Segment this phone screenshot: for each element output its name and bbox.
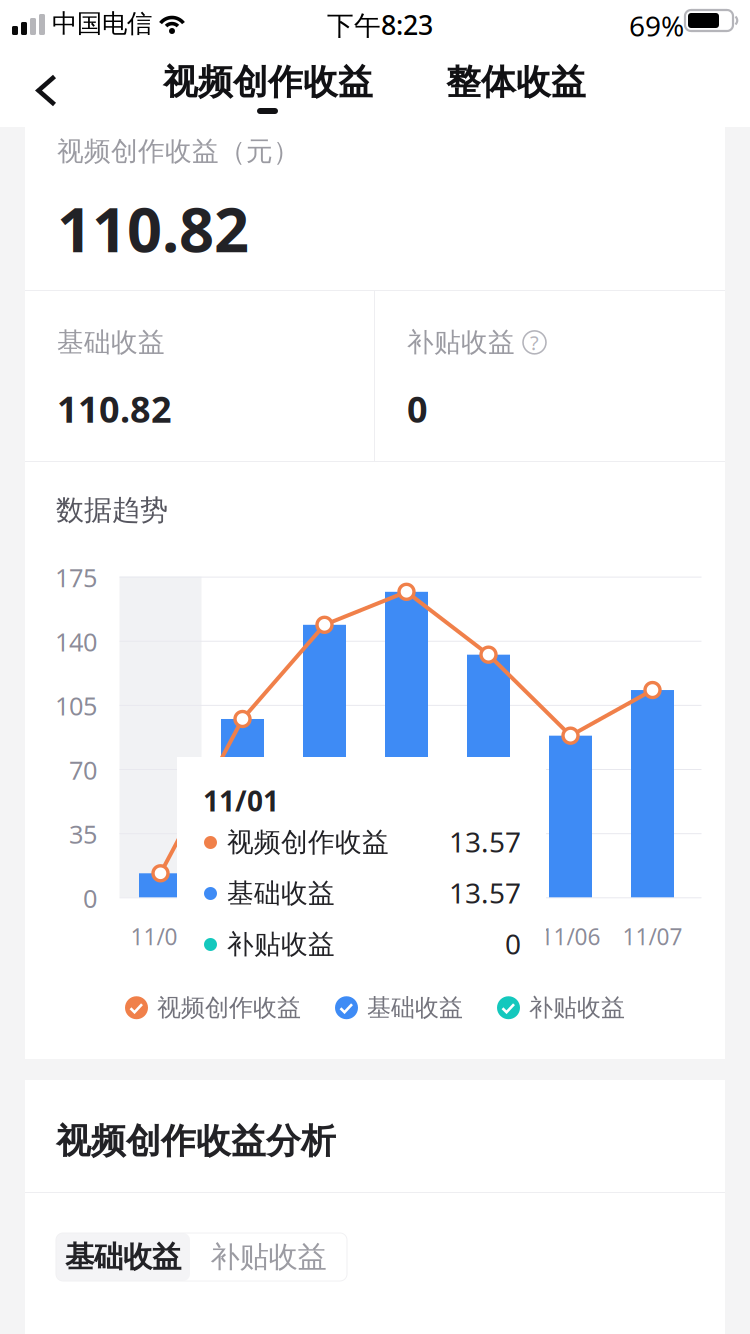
staticText: 视频创作收益 [163,61,373,104]
staticText: 13.57 [449,874,521,911]
staticText: 105 [55,689,97,722]
staticText: 补贴收益 [529,993,625,1022]
staticText: 35 [69,817,97,851]
staticText: 基础收益 [65,1239,181,1275]
button[interactable]: 视频创作收益 [125,993,301,1022]
button[interactable]: 补贴收益 [190,1233,347,1281]
staticText: 70 [69,753,97,787]
staticText: 69% [629,7,684,44]
staticText: 视频创作收益 [227,826,389,859]
staticText: 中国电信 [52,8,152,39]
staticText: 基础收益 [57,326,165,359]
staticText: 11/06 [540,921,600,951]
button[interactable]: 整体收益 [446,54,606,127]
staticText: 基础收益 [367,993,463,1022]
staticText: 补贴收益 [227,928,335,961]
button[interactable]: 补贴收益 [497,993,625,1022]
staticText: 基础收益 [227,877,335,910]
staticText: 0 [407,385,428,433]
staticText: 11/05 [458,921,518,951]
staticText: 补贴收益 [407,326,515,359]
staticText: 11/03 [294,921,354,951]
staticText: 0 [505,925,521,962]
button[interactable]: 基础收益 [335,993,463,1022]
staticText: 下午8:23 [327,7,433,42]
staticText: 整体收益 [446,61,586,104]
staticText: 0 [83,881,97,915]
staticText: 175 [55,561,97,594]
button[interactable]: 基础收益 [56,1233,190,1281]
button[interactable]: 视频创作收益 [163,54,393,127]
staticText: 数据趋势 [56,493,168,527]
staticText: 视频创作收益 [157,993,301,1022]
staticText: 110.82 [57,385,172,433]
staticText: ? [530,329,539,356]
button[interactable]: Back [0,54,92,127]
staticText: 140 [55,625,97,658]
staticText: 11/07 [622,921,682,951]
staticText: 11/01 [203,782,279,819]
staticText: 视频创作收益（元） [57,135,300,168]
staticText: 视频创作收益分析 [56,1120,336,1163]
staticText: 11/02 [212,921,272,951]
staticText: 补贴收益 [210,1239,326,1275]
staticText: 11/01 [130,921,190,951]
staticText: 13.57 [449,823,521,860]
staticText: 110.82 [57,188,249,269]
